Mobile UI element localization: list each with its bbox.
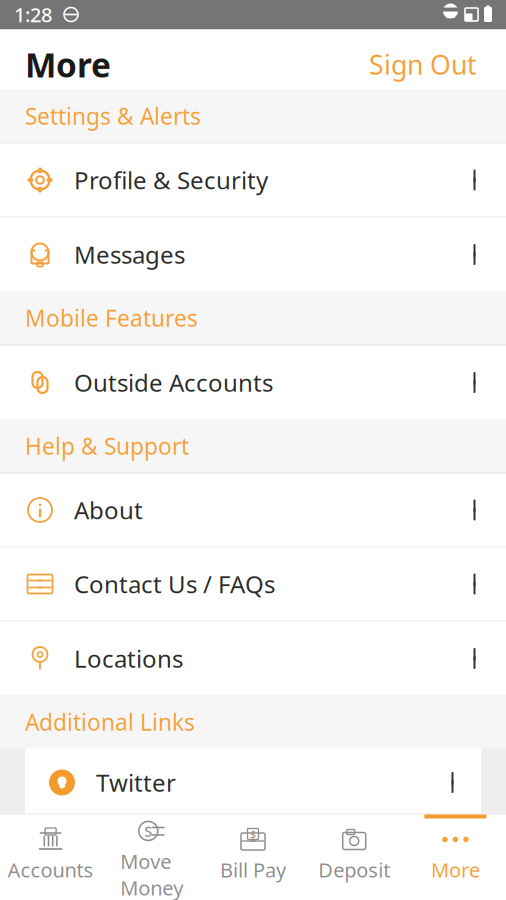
button[interactable]: Sign Out <box>365 37 481 92</box>
staticText: Profile & Security <box>74 164 268 196</box>
staticText: Mobile Features <box>25 303 198 333</box>
staticText: Deposit <box>318 856 390 883</box>
button[interactable]: Accounts <box>0 814 101 900</box>
button[interactable]: More <box>405 814 506 900</box>
staticText: Settings & Alerts <box>25 101 201 131</box>
staticText: Accounts <box>8 856 94 883</box>
staticText: Locations <box>74 643 183 674</box>
staticText: Twitter <box>96 767 176 798</box>
staticText: $ <box>250 827 256 841</box>
staticText: 1:28 <box>14 1 52 28</box>
staticText: S <box>144 821 152 841</box>
button[interactable]: Twitter <box>25 748 481 816</box>
button[interactable]: Locations <box>0 621 506 695</box>
button[interactable]: Profile & Security <box>0 143 506 217</box>
staticText: Move Money <box>120 848 183 900</box>
staticText: More <box>25 42 111 87</box>
staticText: Outside Accounts <box>74 367 273 398</box>
staticText: Contact Us / FAQs <box>74 568 275 600</box>
button[interactable]: Messages <box>0 217 506 291</box>
staticText: Bill Pay <box>220 856 286 883</box>
button[interactable]: Deposit <box>304 814 405 900</box>
staticText: More <box>431 856 480 883</box>
button[interactable]: Outside Accounts <box>0 345 506 419</box>
button[interactable]: About <box>0 473 506 547</box>
staticText: Additional Links <box>25 707 195 737</box>
button[interactable]: $ <box>202 814 304 900</box>
staticText: About <box>74 494 143 526</box>
button[interactable]: Contact Us / FAQs <box>0 547 506 621</box>
staticText: Messages <box>74 239 185 270</box>
staticText: Help & Support <box>25 431 189 461</box>
button[interactable]: S <box>101 814 202 900</box>
staticText: Sign Out <box>369 47 477 82</box>
